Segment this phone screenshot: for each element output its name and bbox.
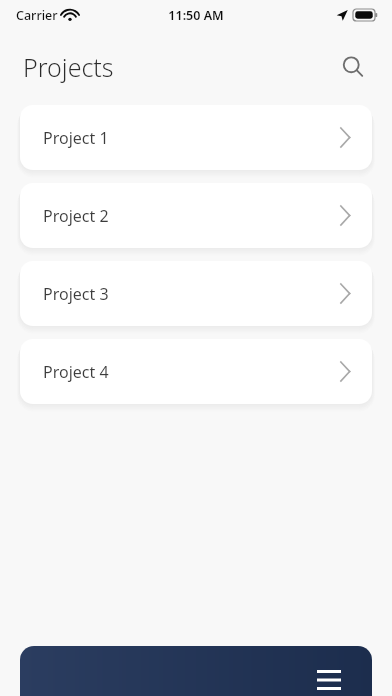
button[interactable]: Project 1 (20, 105, 372, 170)
button[interactable]: Menu (20, 646, 372, 696)
button[interactable]: Project 2 (20, 183, 372, 248)
button[interactable]: Menu (308, 659, 350, 696)
staticText: Project 3 (43, 283, 109, 305)
staticText: Projects (23, 50, 114, 84)
button[interactable]: Search (336, 50, 370, 84)
staticText: Project 1 (43, 127, 109, 149)
staticText: 11:50 AM (0, 7, 392, 24)
staticText: Carrier (16, 7, 58, 24)
staticText: Project 4 (43, 361, 109, 383)
button[interactable]: Project 3 (20, 261, 372, 326)
staticText: Project 2 (43, 205, 109, 227)
button[interactable]: Project 4 (20, 339, 372, 404)
